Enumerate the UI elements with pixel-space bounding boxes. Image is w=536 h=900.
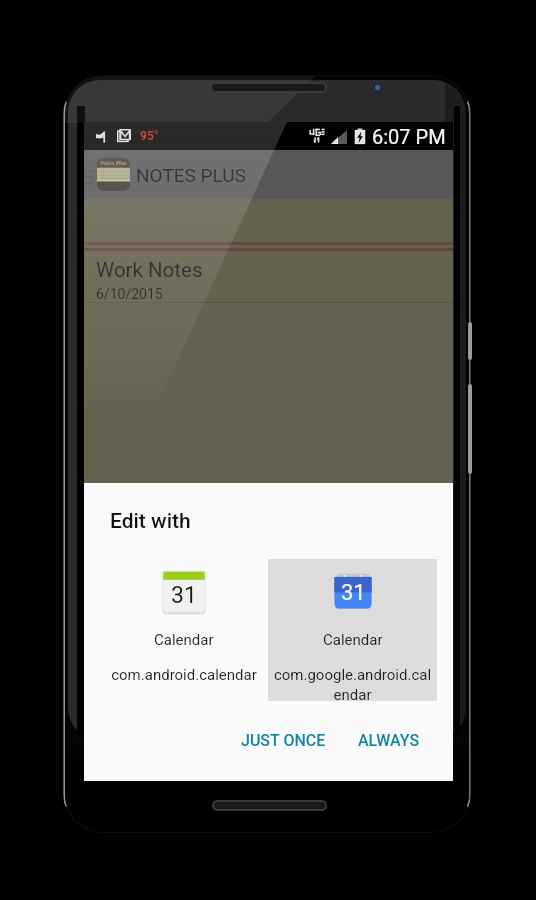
staticText: JUST ONCE xyxy=(241,731,326,750)
staticText: Calendar xyxy=(154,631,214,649)
staticText: 6:07 PM xyxy=(372,125,446,148)
button[interactable]: JUST ONCE xyxy=(233,722,334,759)
staticText: 31 xyxy=(341,580,366,606)
staticText: com.android.calendar xyxy=(111,666,257,684)
staticText: NOTES PLUS xyxy=(136,164,246,186)
staticText: Notes Plus xyxy=(100,160,127,167)
staticText: ALWAYS xyxy=(358,731,420,750)
button[interactable]: ALWAYS xyxy=(350,722,428,759)
staticText: Work Notes xyxy=(96,258,203,282)
button[interactable]: 31 xyxy=(100,559,268,701)
button[interactable]: Work Notes xyxy=(84,251,453,302)
staticText: Edit with xyxy=(110,509,191,534)
staticText: 95° xyxy=(140,129,159,143)
staticText: 6/10/2015 xyxy=(96,286,163,302)
staticText: Calendar xyxy=(323,631,383,649)
staticText: com.google.android.calendar xyxy=(272,666,433,701)
staticText: 31 xyxy=(171,582,197,609)
button[interactable]: 31 xyxy=(268,559,437,701)
